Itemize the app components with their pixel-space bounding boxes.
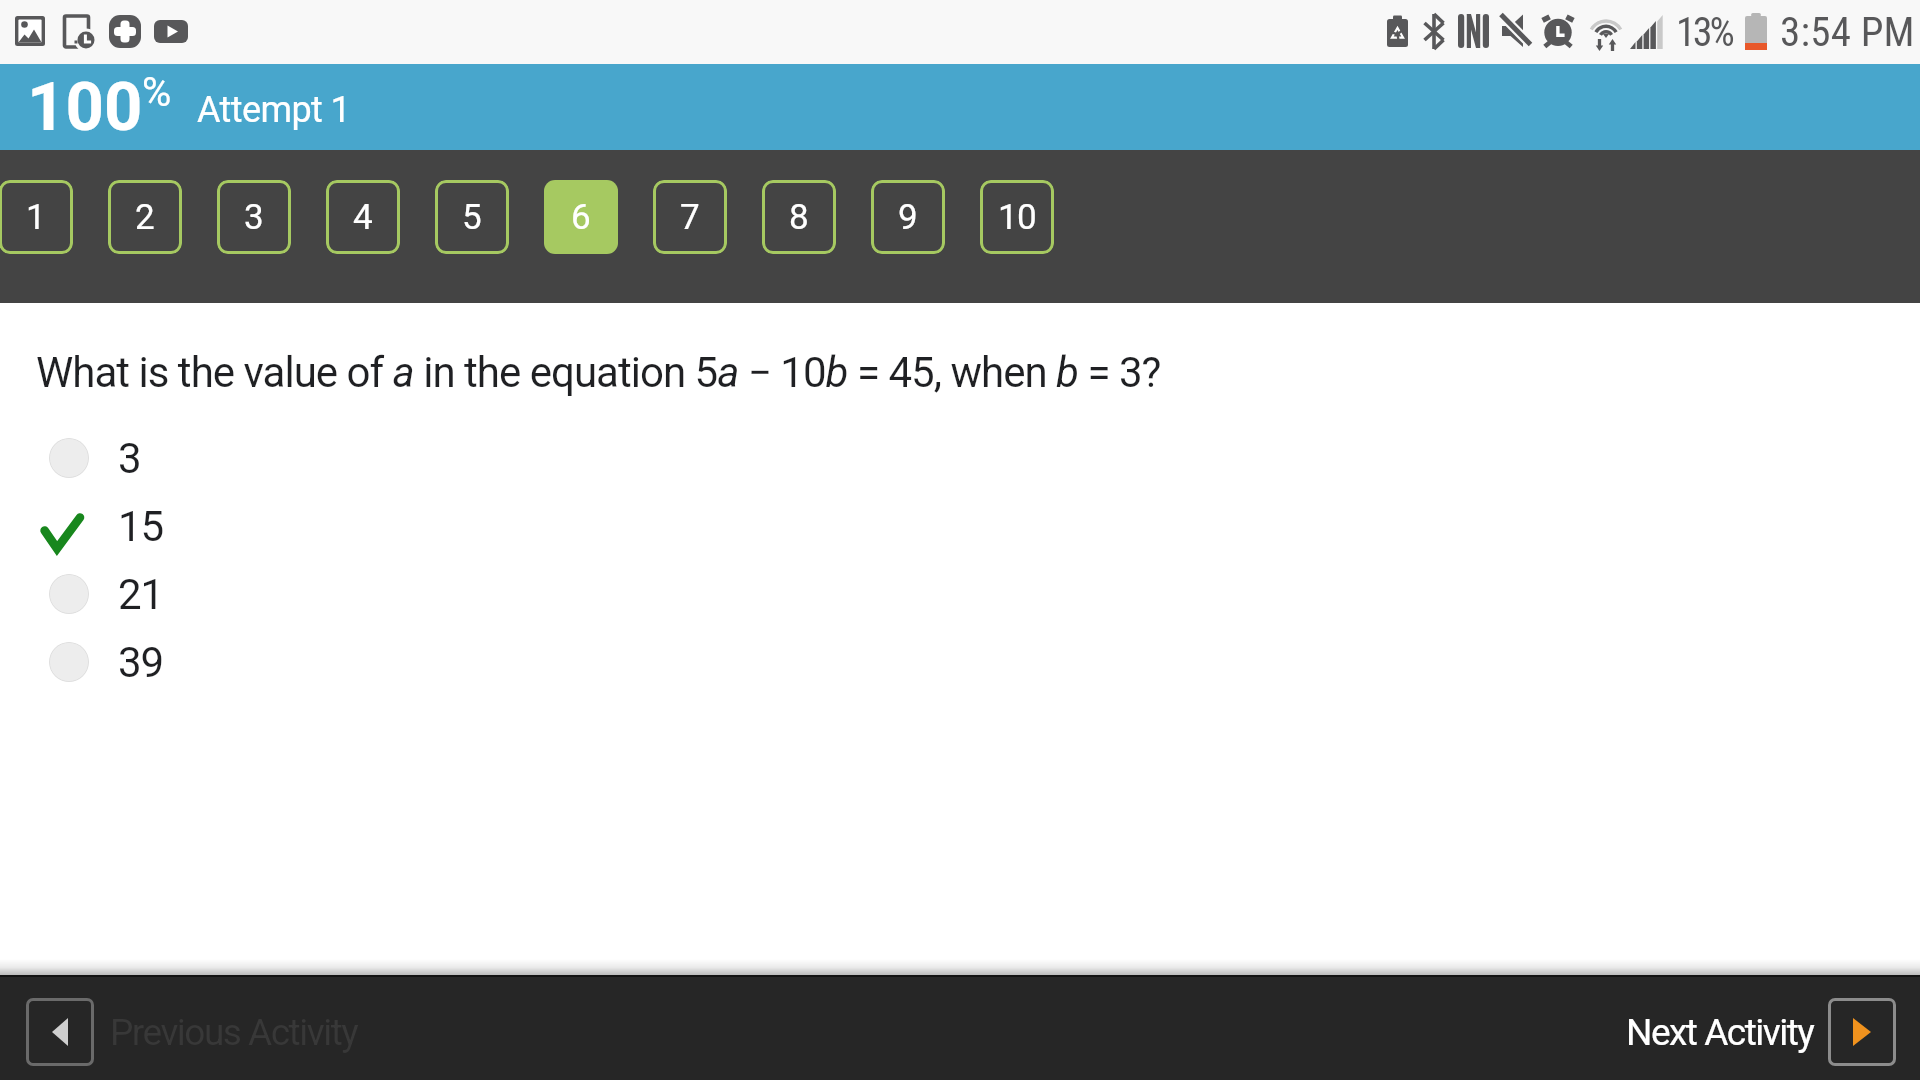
button[interactable]: 8 <box>762 180 836 254</box>
staticText: 10 <box>998 197 1037 238</box>
staticText: 39 <box>118 638 164 687</box>
button[interactable]: 2 <box>108 180 182 254</box>
staticText: 8 <box>789 197 809 238</box>
button[interactable]: 39 <box>0 628 1920 696</box>
button[interactable]: 4 <box>326 180 400 254</box>
staticText: What is the value of a in the equation 5… <box>36 348 1161 397</box>
button[interactable]: 3 <box>0 424 1920 492</box>
button[interactable]: 7 <box>653 180 727 254</box>
button[interactable]: 15 <box>0 492 1920 560</box>
staticText: 3:54 PM <box>1780 8 1915 56</box>
button[interactable]: 3 <box>217 180 291 254</box>
other: Previous Activity <box>26 998 94 1066</box>
staticText: 5 <box>462 197 482 238</box>
button[interactable]: 21 <box>0 560 1920 628</box>
button[interactable]: 10 <box>980 180 1054 254</box>
button[interactable]: 1 <box>0 180 73 254</box>
staticText: 1 <box>26 197 46 238</box>
staticText: 21 <box>118 570 164 619</box>
staticText: 3 <box>118 434 141 483</box>
button[interactable]: Next Activity <box>1626 998 1896 1066</box>
staticText: 2 <box>135 197 155 238</box>
button[interactable]: 9 <box>871 180 945 254</box>
button[interactable]: Previous Activity <box>26 998 358 1066</box>
staticText: 6 <box>571 197 591 238</box>
staticText: 15 <box>118 502 164 551</box>
staticText: 4 <box>353 197 373 238</box>
staticText: 13% <box>1676 9 1732 56</box>
staticText: Next Activity <box>1626 1011 1814 1054</box>
staticText: % <box>142 69 172 116</box>
button[interactable]: 6 <box>544 180 618 254</box>
other: Next Activity <box>1828 998 1896 1066</box>
staticText: 9 <box>898 197 918 238</box>
staticText: 7 <box>680 197 700 238</box>
staticText: 100 <box>27 68 143 147</box>
button[interactable]: 5 <box>435 180 509 254</box>
staticText: Attempt 1 <box>197 89 351 131</box>
staticText: Previous Activity <box>110 1011 358 1054</box>
staticText: 3 <box>244 197 264 238</box>
